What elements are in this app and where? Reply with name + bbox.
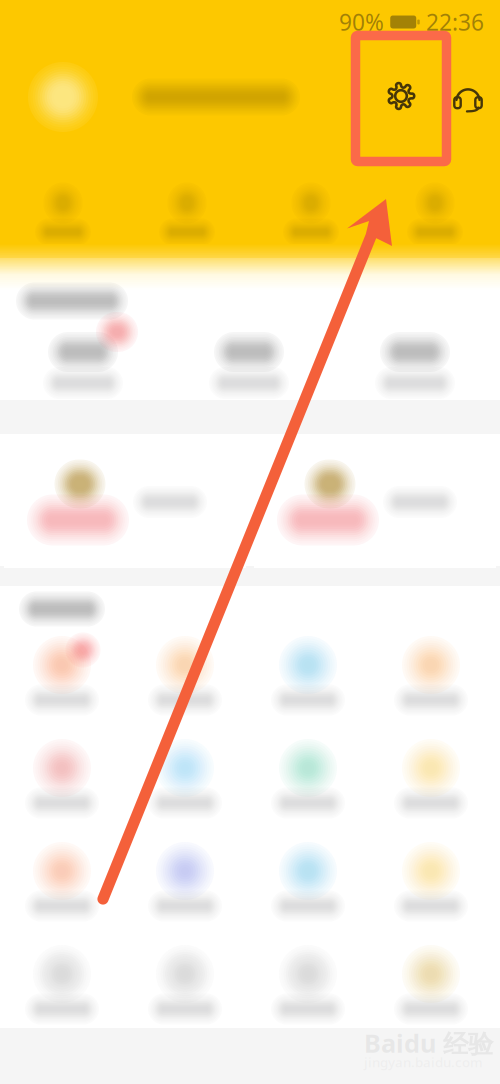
button[interactable]: Customer service	[451, 82, 485, 116]
button[interactable]	[4, 440, 246, 568]
button[interactable]	[372, 614, 495, 717]
button[interactable]	[3, 923, 126, 1026]
button[interactable]	[3, 820, 126, 923]
button[interactable]	[126, 614, 249, 717]
button[interactable]	[126, 820, 249, 923]
button[interactable]: Settings	[379, 74, 423, 118]
button[interactable]	[372, 820, 495, 923]
button[interactable]	[254, 440, 496, 568]
button[interactable]	[3, 614, 126, 717]
button[interactable]	[3, 717, 126, 820]
button[interactable]	[372, 717, 495, 820]
button[interactable]	[249, 717, 372, 820]
button[interactable]	[126, 923, 249, 1026]
button[interactable]	[249, 923, 372, 1026]
staticText: 22:36	[426, 7, 484, 37]
staticText: Baidu 经验	[364, 1026, 493, 1060]
button[interactable]	[126, 717, 249, 820]
button[interactable]	[249, 820, 372, 923]
button[interactable]	[249, 614, 372, 717]
button[interactable]	[372, 923, 495, 1026]
staticText: 90%	[339, 7, 384, 37]
